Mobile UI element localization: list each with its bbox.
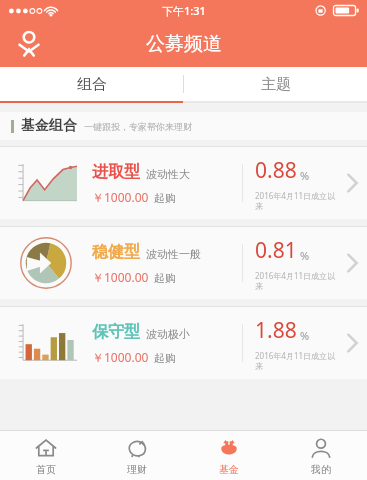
staticText: 保守型 [92,322,140,342]
button[interactable]: 保守型 [0,306,367,379]
staticText: 稳健型 [92,242,140,262]
button[interactable]: 组合 [0,67,183,101]
staticText: % [300,328,310,343]
staticText: 波动极小 [146,327,190,341]
staticText: 组合 [77,75,107,94]
staticText: 理财 [127,463,147,476]
staticText: % [300,248,310,263]
button[interactable]: 理财 [91,431,183,480]
staticText: 波动性大 [146,167,190,181]
staticText: 公募频道 [146,32,222,56]
staticText: 2016年4月11日成立以来 [255,270,337,291]
staticText: 下午1:31 [162,3,206,18]
staticText: ￥1000.00 [92,269,149,285]
staticText: ￥1000.00 [92,189,149,205]
staticText: 2016年4月11日成立以来 [255,190,337,211]
button[interactable]: 首页 [0,431,91,480]
staticText: 一键跟投，专家帮你来理财 [84,121,192,132]
button[interactable]: 基金 [183,431,275,480]
button[interactable]: 稳健型 [0,226,367,299]
staticText: % [300,168,310,183]
staticText: 进取型 [92,162,140,182]
staticText: 起购 [154,351,176,365]
staticText: 首页 [36,463,56,476]
staticText: 主题 [261,75,291,94]
staticText: 基金组合 [21,117,77,135]
staticText: 波动性一般 [146,247,201,261]
staticText: 0.88 [255,156,297,185]
staticText: ￥1000.00 [92,349,149,365]
button[interactable]: 进取型 [0,146,367,219]
button[interactable]: Profile [12,27,46,61]
staticText: 起购 [154,271,176,285]
button[interactable]: 我的 [275,431,367,480]
button[interactable]: 主题 [184,67,367,101]
staticText: 1.88 [255,316,297,345]
staticText: 起购 [154,191,176,205]
staticText: 2016年4月11日成立以来 [255,350,337,371]
staticText: 0.81 [255,236,297,265]
staticText: 基金 [219,463,239,476]
staticText: 我的 [311,463,331,476]
